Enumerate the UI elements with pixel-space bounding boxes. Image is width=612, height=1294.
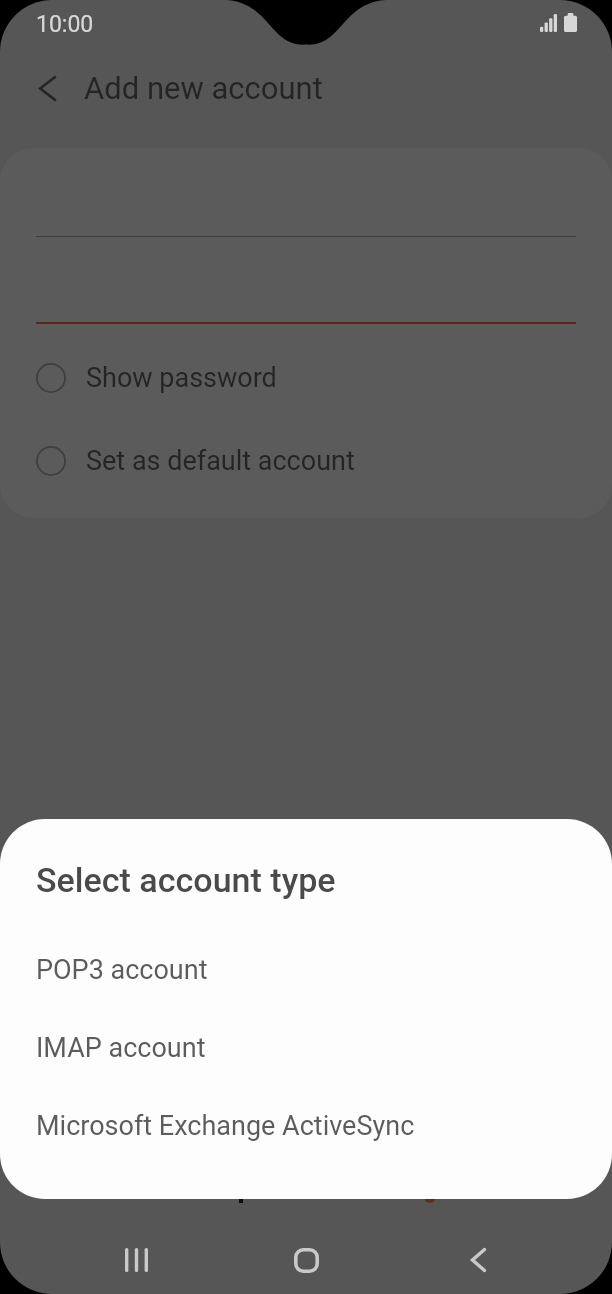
staticText: Microsoft Exchange ActiveSync (36, 1110, 415, 1142)
button[interactable]: POP3 account (0, 931, 612, 1009)
button[interactable]: Navigate up (20, 56, 74, 120)
button[interactable]: Show password (0, 350, 612, 406)
staticText: Set as default account (86, 445, 355, 477)
button[interactable]: IMAP account (0, 1009, 612, 1087)
staticText: Select account type (36, 860, 336, 900)
button[interactable]: Back (391, 1226, 561, 1294)
staticText: POP3 account (36, 954, 208, 986)
button[interactable]: Recents (51, 1226, 221, 1294)
button[interactable]: Microsoft Exchange ActiveSync (0, 1087, 612, 1165)
staticText: Show password (86, 362, 277, 394)
button[interactable]: Home (221, 1226, 391, 1294)
staticText: Add new account (84, 70, 323, 106)
staticText: 10:00 (36, 11, 94, 38)
staticText: IMAP account (36, 1032, 206, 1064)
button[interactable]: Set as default account (0, 433, 612, 489)
